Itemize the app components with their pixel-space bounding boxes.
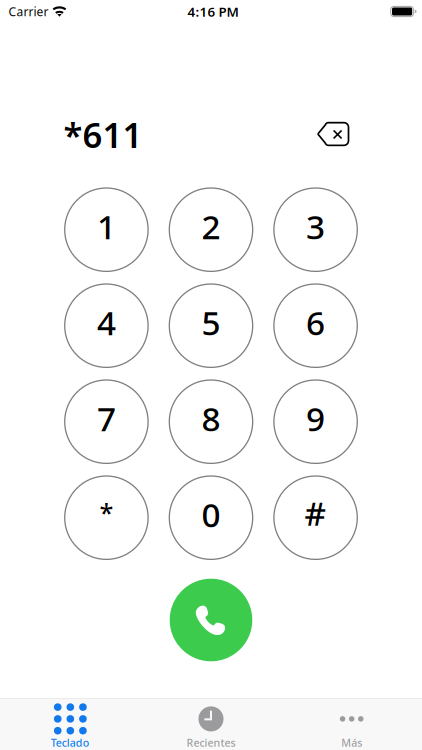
- button[interactable]: 6: [274, 284, 357, 367]
- staticText: 0: [201, 492, 220, 536]
- button[interactable]: 2: [169, 188, 253, 271]
- staticText: *611: [63, 111, 142, 157]
- button[interactable]: 3: [274, 188, 357, 271]
- staticText: 4: [97, 300, 116, 344]
- staticText: 1: [97, 204, 116, 248]
- staticText: #: [305, 491, 327, 535]
- button[interactable]: 9: [274, 380, 357, 463]
- button[interactable]: 4: [65, 284, 148, 367]
- staticText: 4:16 PM: [187, 3, 238, 20]
- button[interactable]: 8: [169, 380, 253, 463]
- staticText: 6: [306, 300, 325, 344]
- staticText: *: [99, 495, 113, 529]
- staticText: 9: [306, 396, 325, 440]
- button[interactable]: 5: [169, 284, 253, 367]
- button[interactable]: 0: [169, 476, 253, 559]
- button[interactable]: Delete: [317, 123, 349, 146]
- staticText: 7: [97, 396, 116, 440]
- staticText: 8: [201, 396, 220, 440]
- button[interactable]: Teclado: [0, 699, 141, 750]
- button[interactable]: *: [65, 476, 148, 559]
- staticText: Carrier: [9, 3, 49, 19]
- button[interactable]: 7: [65, 380, 148, 463]
- staticText: Recientes: [186, 735, 235, 750]
- staticText: 3: [306, 204, 325, 248]
- staticText: 5: [201, 300, 220, 344]
- button[interactable]: #: [274, 476, 357, 559]
- button[interactable]: Recientes: [141, 699, 281, 750]
- button[interactable]: Más: [281, 699, 422, 750]
- button[interactable]: 1: [65, 188, 148, 271]
- staticText: Teclado: [51, 735, 90, 750]
- button[interactable]: Call: [170, 579, 252, 661]
- staticText: 2: [201, 204, 220, 248]
- staticText: Más: [341, 735, 362, 750]
